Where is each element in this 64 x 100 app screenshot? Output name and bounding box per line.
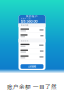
button[interactable] [18, 42, 45, 48]
button[interactable] [18, 48, 45, 54]
staticText: 128,560.00 [20, 20, 37, 24]
button[interactable] [18, 33, 45, 39]
staticText: 常用功能 [20, 24, 28, 27]
staticText: 我的账户 [26, 14, 38, 18]
button[interactable] [18, 27, 45, 33]
button[interactable] [18, 54, 45, 60]
staticText: 最近交易 [20, 39, 28, 42]
staticText: 总资产（元） [20, 17, 32, 20]
staticText: 账户余额 一目了然 [7, 82, 57, 91]
staticText: 立即查看 [28, 65, 36, 68]
button[interactable]: 立即查看 [18, 63, 45, 70]
